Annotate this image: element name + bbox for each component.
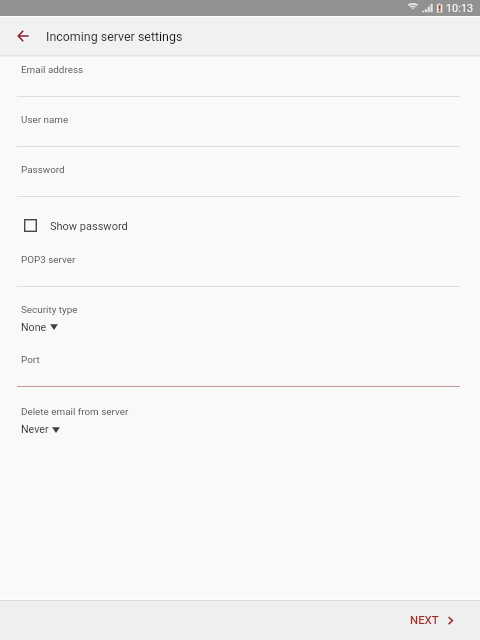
button[interactable] [400,600,470,640]
staticText: None [21,321,47,333]
button[interactable] [0,97,480,146]
staticText: Show password [50,220,128,233]
staticText: Password [21,164,65,176]
staticText: Delete email from server [21,406,129,418]
button[interactable] [0,387,480,442]
staticText: User name [21,114,69,126]
button[interactable] [0,343,480,386]
staticText: Security type [21,304,78,316]
staticText: NEXT [410,613,439,626]
staticText: Never [21,423,49,435]
button[interactable] [0,245,480,286]
staticText: Email address [21,64,84,76]
staticText: Incoming server settings [46,29,183,44]
staticText: Port [21,354,40,366]
button[interactable] [0,147,480,196]
button[interactable] [0,56,480,96]
button[interactable] [0,203,480,245]
staticText: 10:13 [446,2,474,15]
button[interactable]: Navigate up [6,17,40,55]
button[interactable] [0,287,480,342]
staticText: POP3 server [21,254,76,266]
